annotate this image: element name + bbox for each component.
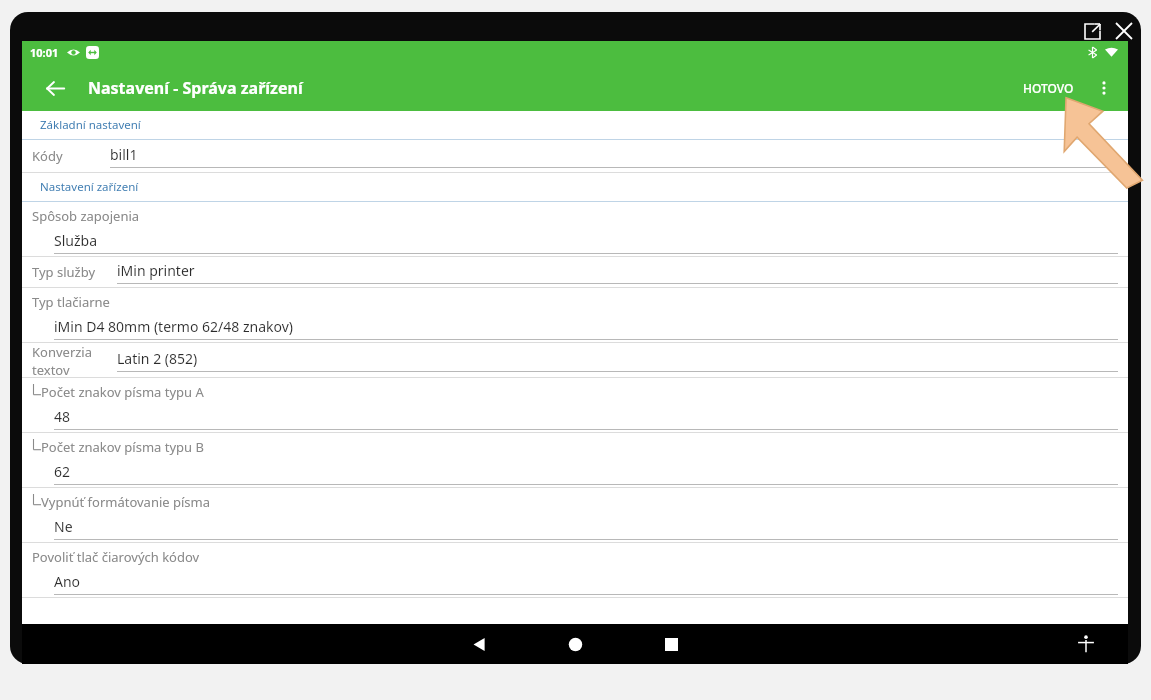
staticText: Typ tlačiarne xyxy=(32,293,110,311)
staticText: 10:01 xyxy=(30,45,59,60)
button[interactable]: Pop out xyxy=(1079,18,1105,44)
staticText: iMin D4 80mm (termo 62/48 znakov) xyxy=(54,317,293,336)
staticText: Nastavení - Správa zařízení xyxy=(88,77,303,99)
staticText: bill1 xyxy=(110,145,138,164)
staticText: HOTOVO xyxy=(1023,80,1074,96)
button[interactable]: Základní nastavení xyxy=(22,111,1128,140)
button[interactable]: Počet znakov písma typu B xyxy=(22,433,1128,488)
button[interactable]: Close xyxy=(1111,18,1137,44)
staticText: textov xyxy=(32,361,70,377)
button[interactable]: Accessibility xyxy=(1066,624,1106,664)
button[interactable]: Typ tlačiarne xyxy=(22,288,1128,343)
staticText: Spôsob zapojenia xyxy=(32,207,140,225)
button[interactable]: Home xyxy=(545,624,605,664)
button[interactable]: Back xyxy=(449,624,509,664)
staticText: Typ služby xyxy=(32,263,117,281)
staticText: Latin 2 (852) xyxy=(117,349,198,368)
staticText: Povoliť tlač čiarových kódov xyxy=(32,548,200,566)
button[interactable]: Typ služby xyxy=(22,257,1128,288)
staticText: Základní nastavení xyxy=(40,117,141,133)
button[interactable]: HOTOVO xyxy=(1015,72,1082,104)
staticText: Počet znakov písma typu B xyxy=(41,438,204,456)
button[interactable]: Recent apps xyxy=(641,624,701,664)
staticText: iMin printer xyxy=(117,261,195,280)
staticText: 62 xyxy=(54,462,71,481)
button[interactable]: Povoliť tlač čiarových kódov xyxy=(22,543,1128,598)
staticText: Nastavení zařízení xyxy=(40,179,139,195)
staticText: 48 xyxy=(54,407,71,426)
button[interactable]: Nastavení zařízení xyxy=(22,173,1128,202)
staticText: Kódy xyxy=(32,147,110,165)
button[interactable]: Kódy xyxy=(22,140,1128,173)
staticText: Ne xyxy=(54,517,73,536)
button[interactable]: Konverzia xyxy=(22,343,1128,378)
staticText: Vypnúť formátovanie písma xyxy=(41,493,211,511)
button[interactable]: More options xyxy=(1088,72,1120,104)
button[interactable]: Back xyxy=(38,71,72,105)
staticText: Konverzia xyxy=(32,343,93,361)
staticText: Služba xyxy=(54,231,97,250)
staticText: Počet znakov písma typu A xyxy=(41,383,204,401)
button[interactable]: Spôsob zapojenia xyxy=(22,202,1128,257)
button[interactable]: Počet znakov písma typu A xyxy=(22,378,1128,433)
staticText: Ano xyxy=(54,572,81,591)
button[interactable]: Vypnúť formátovanie písma xyxy=(22,488,1128,543)
